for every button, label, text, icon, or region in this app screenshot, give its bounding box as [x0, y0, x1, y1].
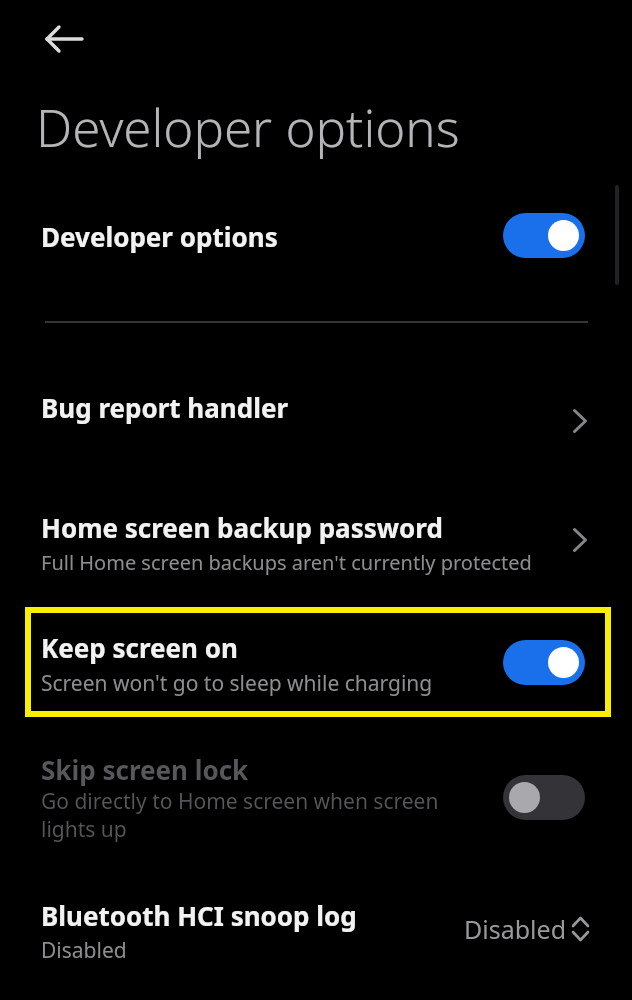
button[interactable]: [503, 775, 585, 820]
button[interactable]: [0, 745, 632, 845]
staticText: Home screen backup password: [41, 510, 443, 545]
staticText: Go directly to Home screen when screen: [41, 787, 439, 816]
staticText: Bug report handler: [41, 390, 289, 425]
button[interactable]: [0, 890, 632, 975]
button[interactable]: [25, 607, 611, 717]
staticText: Developer options: [36, 92, 460, 161]
button[interactable]: [0, 500, 632, 580]
staticText: Bluetooth HCI snoop log: [41, 898, 357, 933]
button[interactable]: [503, 213, 585, 258]
button[interactable]: [0, 206, 632, 266]
button[interactable]: [44, 24, 84, 54]
staticText: lights up: [41, 815, 127, 844]
staticText: Full Home screen backups aren't currentl…: [41, 549, 532, 576]
staticText: Keep screen on: [41, 630, 238, 665]
button[interactable]: [0, 380, 632, 440]
staticText: Skip screen lock: [41, 752, 249, 787]
button[interactable]: [503, 640, 585, 685]
staticText: Disabled: [41, 936, 127, 965]
staticText: Developer options: [41, 219, 278, 254]
staticText: Screen won't go to sleep while charging: [41, 669, 433, 698]
staticText: Disabled: [464, 912, 567, 946]
